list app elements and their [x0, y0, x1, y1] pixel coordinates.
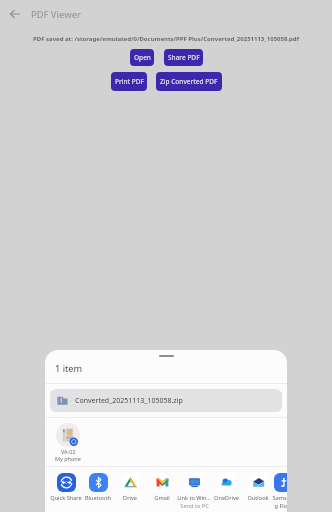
staticText: Share PDF: [168, 53, 200, 62]
button[interactable]: Print PDF: [111, 72, 147, 91]
staticText: Link to Win...: [177, 494, 211, 502]
staticText: Quick Share: [50, 494, 82, 502]
button[interactable]: Open: [130, 49, 154, 66]
button[interactable]: Share PDF: [164, 49, 203, 66]
staticText: Send to PC: [180, 502, 209, 510]
staticText: Converted_20251113_105058.zip: [75, 396, 183, 406]
staticText: Open: [134, 53, 151, 62]
staticText: VA-02: [61, 448, 76, 455]
button[interactable]: Zip Converted PDF: [156, 72, 222, 91]
staticText: Bluetooth: [85, 494, 111, 502]
button[interactable]: Drive: [114, 473, 146, 509]
button[interactable]: Bluetooth: [82, 473, 114, 509]
staticText: PDF Viewer: [31, 8, 81, 21]
staticText: PDF saved at: /storage/emulated/0/Docume…: [0, 35, 332, 43]
staticText: My phone: [55, 455, 81, 462]
staticText: Outlook: [247, 494, 269, 502]
staticText: Drive: [123, 494, 137, 502]
staticText: Print PDF: [115, 77, 144, 86]
button[interactable]: Link to Win...: [178, 473, 210, 509]
staticText: Zip Converted PDF: [160, 77, 218, 86]
button[interactable]: Converted_20251113_105058.zip: [50, 389, 282, 412]
button[interactable]: Samsung Flow: [274, 473, 287, 509]
button[interactable]: Outlook: [242, 473, 274, 509]
staticText: Samsung Flow: [272, 494, 287, 510]
staticText: OneDrive: [214, 494, 239, 502]
staticText: Gmail: [154, 494, 170, 502]
button[interactable]: Gmail: [146, 473, 178, 509]
button[interactable]: OneDrive: [210, 473, 242, 509]
button[interactable]: Back: [6, 5, 24, 23]
button[interactable]: Quick Share: [50, 473, 82, 509]
button[interactable]: VA-02: [53, 423, 83, 462]
staticText: 1 item: [55, 362, 83, 375]
